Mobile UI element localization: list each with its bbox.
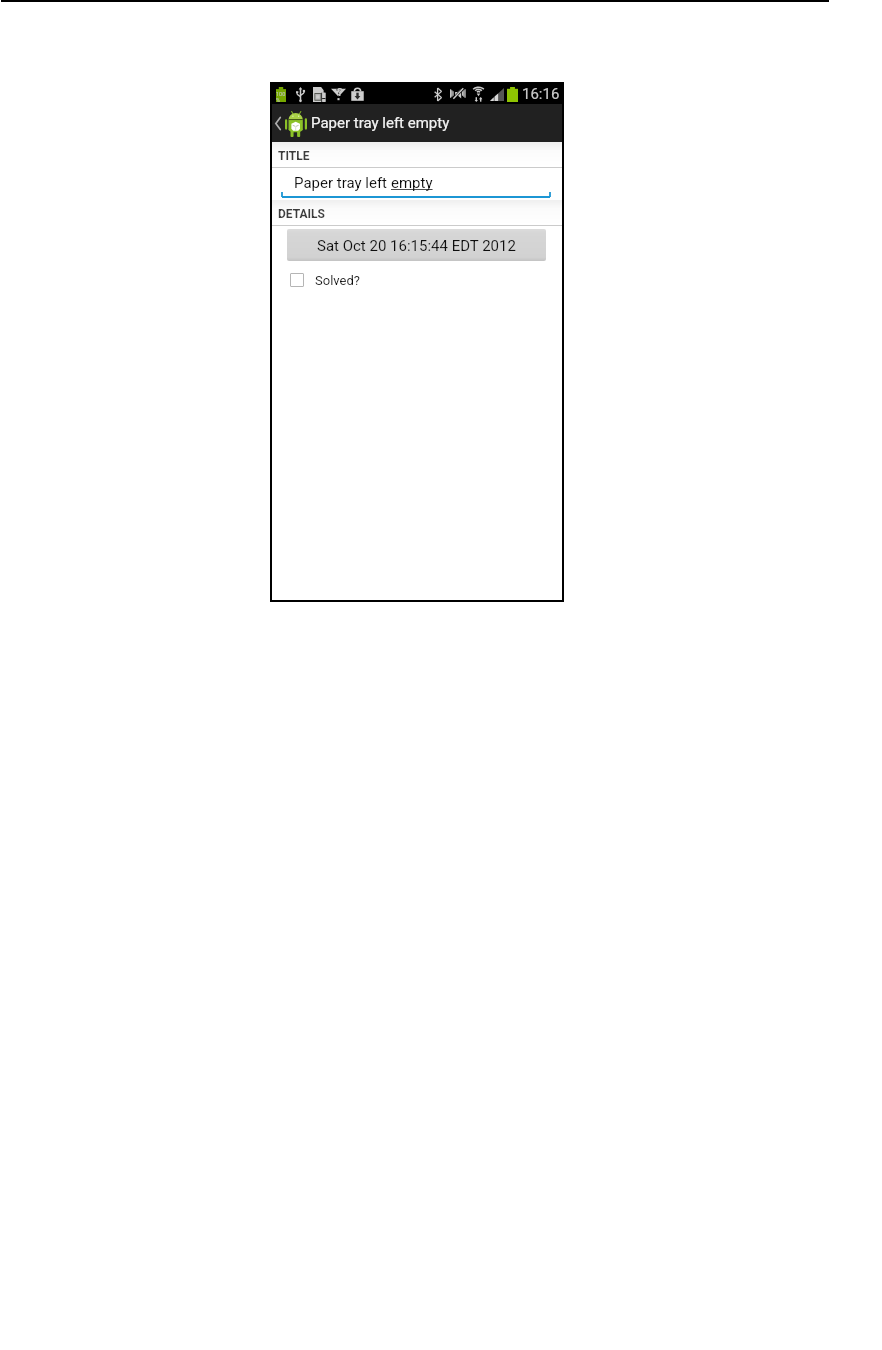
staticText: ?: [336, 86, 342, 100]
button[interactable]: Navigate up: [272, 104, 309, 142]
button[interactable]: Paper tray left: [272, 168, 562, 200]
staticText: Solved?: [315, 273, 360, 288]
staticText: 100%: [276, 91, 286, 103]
button[interactable]: Sat Oct 20 16:15:44 EDT 2012: [287, 229, 546, 261]
staticText: Paper tray left: [294, 174, 391, 192]
staticText: empty: [391, 174, 433, 192]
staticText: 16:16: [522, 85, 560, 103]
staticText: ?: [337, 86, 343, 99]
button[interactable]: Solved?: [272, 272, 562, 287]
staticText: Sat Oct 20 16:15:44 EDT 2012: [317, 237, 516, 255]
staticText: Paper tray left empty: [311, 114, 450, 132]
staticText: DETAILS: [278, 207, 325, 221]
staticText: TITLE: [278, 149, 310, 163]
